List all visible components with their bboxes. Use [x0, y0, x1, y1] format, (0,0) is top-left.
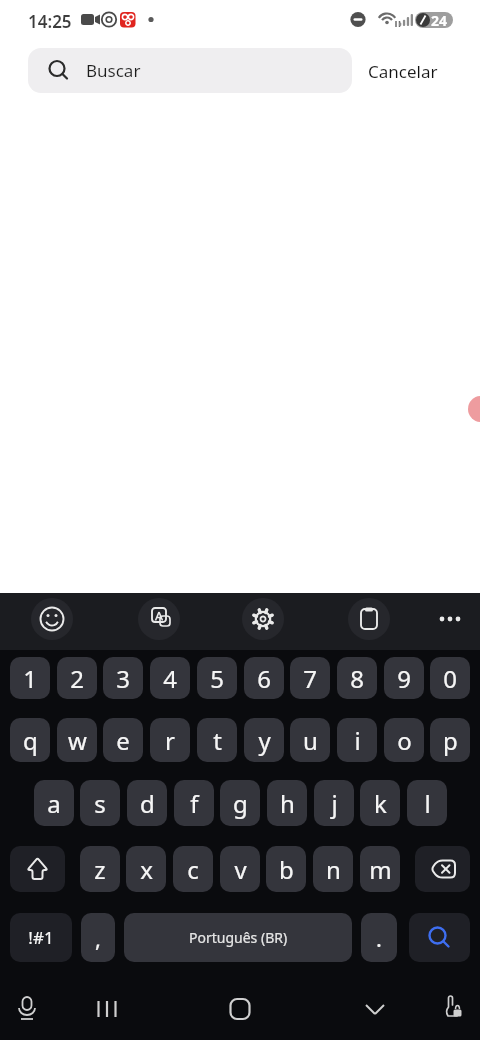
button[interactable] [351, 985, 399, 1033]
staticText: p [443, 724, 458, 757]
button[interactable]: 1 [10, 657, 50, 699]
button[interactable]: 4 [150, 657, 190, 699]
button[interactable]: f [174, 780, 214, 826]
button[interactable]: n [313, 846, 353, 892]
button[interactable] [432, 603, 468, 635]
staticText: 1 [23, 662, 37, 695]
staticText: r [165, 724, 175, 757]
staticText: x [140, 853, 153, 886]
button[interactable]: k [360, 780, 400, 826]
staticText: n [326, 853, 341, 886]
button[interactable]: d [127, 780, 167, 826]
staticText: w [68, 724, 87, 757]
button[interactable]: 7 [290, 657, 330, 699]
button[interactable] [468, 396, 480, 422]
button[interactable]: x [126, 846, 166, 892]
button[interactable] [348, 598, 390, 640]
staticText: y [258, 724, 271, 757]
staticText: d [140, 787, 155, 820]
button[interactable]: w [57, 718, 97, 762]
staticText: 3 [116, 662, 130, 695]
staticText: e [116, 724, 130, 757]
staticText: 0 [443, 662, 457, 695]
staticText: Cancelar [368, 60, 438, 83]
button[interactable]: Buscar [28, 48, 352, 93]
staticText: 6 [257, 662, 271, 695]
button[interactable]: y [244, 718, 284, 762]
staticText: . [376, 923, 382, 953]
button[interactable]: l [407, 780, 447, 826]
button[interactable]: g [220, 780, 260, 826]
button[interactable]: z [80, 846, 120, 892]
staticText: 14:25 [28, 10, 72, 33]
staticText: Buscar [86, 59, 141, 82]
button[interactable] [415, 846, 470, 892]
button[interactable]: u [290, 718, 330, 762]
button[interactable]: 8 [337, 657, 377, 699]
staticText: !#1 [28, 926, 54, 949]
staticText: c [187, 853, 199, 886]
button[interactable]: , [81, 913, 115, 962]
button[interactable]: 5 [197, 657, 237, 699]
button[interactable]: s [80, 780, 120, 826]
button[interactable]: . [361, 913, 397, 962]
button[interactable]: i [337, 718, 377, 762]
staticText: u [303, 724, 318, 757]
button[interactable]: !#1 [10, 913, 72, 962]
staticText: m [369, 853, 392, 886]
button[interactable]: h [267, 780, 307, 826]
staticText: j [331, 787, 338, 820]
staticText: 9 [397, 662, 411, 695]
staticText: 8 [350, 662, 364, 695]
staticText: s [94, 787, 106, 820]
button[interactable]: r [150, 718, 190, 762]
staticText: l [424, 787, 431, 820]
button[interactable] [409, 913, 470, 962]
button[interactable]: q [10, 718, 50, 762]
staticText: Português (BR) [189, 928, 288, 947]
button[interactable]: 9 [384, 657, 424, 699]
button[interactable] [431, 985, 479, 1033]
button[interactable]: 3 [103, 657, 143, 699]
button[interactable]: v [220, 846, 260, 892]
button[interactable]: a [34, 780, 74, 826]
button[interactable] [138, 598, 180, 640]
staticText: q [23, 724, 38, 757]
staticText: o [397, 724, 412, 757]
staticText: , [95, 923, 101, 953]
button[interactable]: Português (BR) [124, 913, 352, 962]
staticText: i [354, 724, 361, 757]
staticText: h [280, 787, 295, 820]
staticText: t [213, 724, 222, 757]
button[interactable]: t [197, 718, 237, 762]
button[interactable]: p [430, 718, 470, 762]
button[interactable]: 0 [430, 657, 470, 699]
staticText: 4 [163, 662, 177, 695]
button[interactable]: m [360, 846, 400, 892]
button[interactable] [83, 985, 131, 1033]
button[interactable]: e [103, 718, 143, 762]
button[interactable] [216, 985, 264, 1033]
button[interactable] [242, 598, 284, 640]
staticText: 5 [210, 662, 224, 695]
staticText: k [374, 787, 387, 820]
staticText: 2 [70, 662, 84, 695]
staticText: a [47, 787, 61, 820]
staticText: 24 [431, 11, 448, 30]
button[interactable]: o [384, 718, 424, 762]
button[interactable]: j [314, 780, 354, 826]
staticText: 7 [303, 662, 317, 695]
button[interactable] [3, 985, 51, 1033]
staticText: f [190, 787, 199, 820]
button[interactable] [10, 846, 65, 892]
button[interactable]: 6 [244, 657, 284, 699]
button[interactable] [31, 598, 73, 640]
button[interactable]: c [173, 846, 213, 892]
staticText: z [94, 853, 106, 886]
button[interactable]: Cancelar [368, 60, 438, 83]
staticText: g [233, 787, 248, 820]
button[interactable]: 2 [57, 657, 97, 699]
staticText: b [279, 853, 294, 886]
button[interactable]: b [266, 846, 306, 892]
staticText: v [234, 853, 247, 886]
